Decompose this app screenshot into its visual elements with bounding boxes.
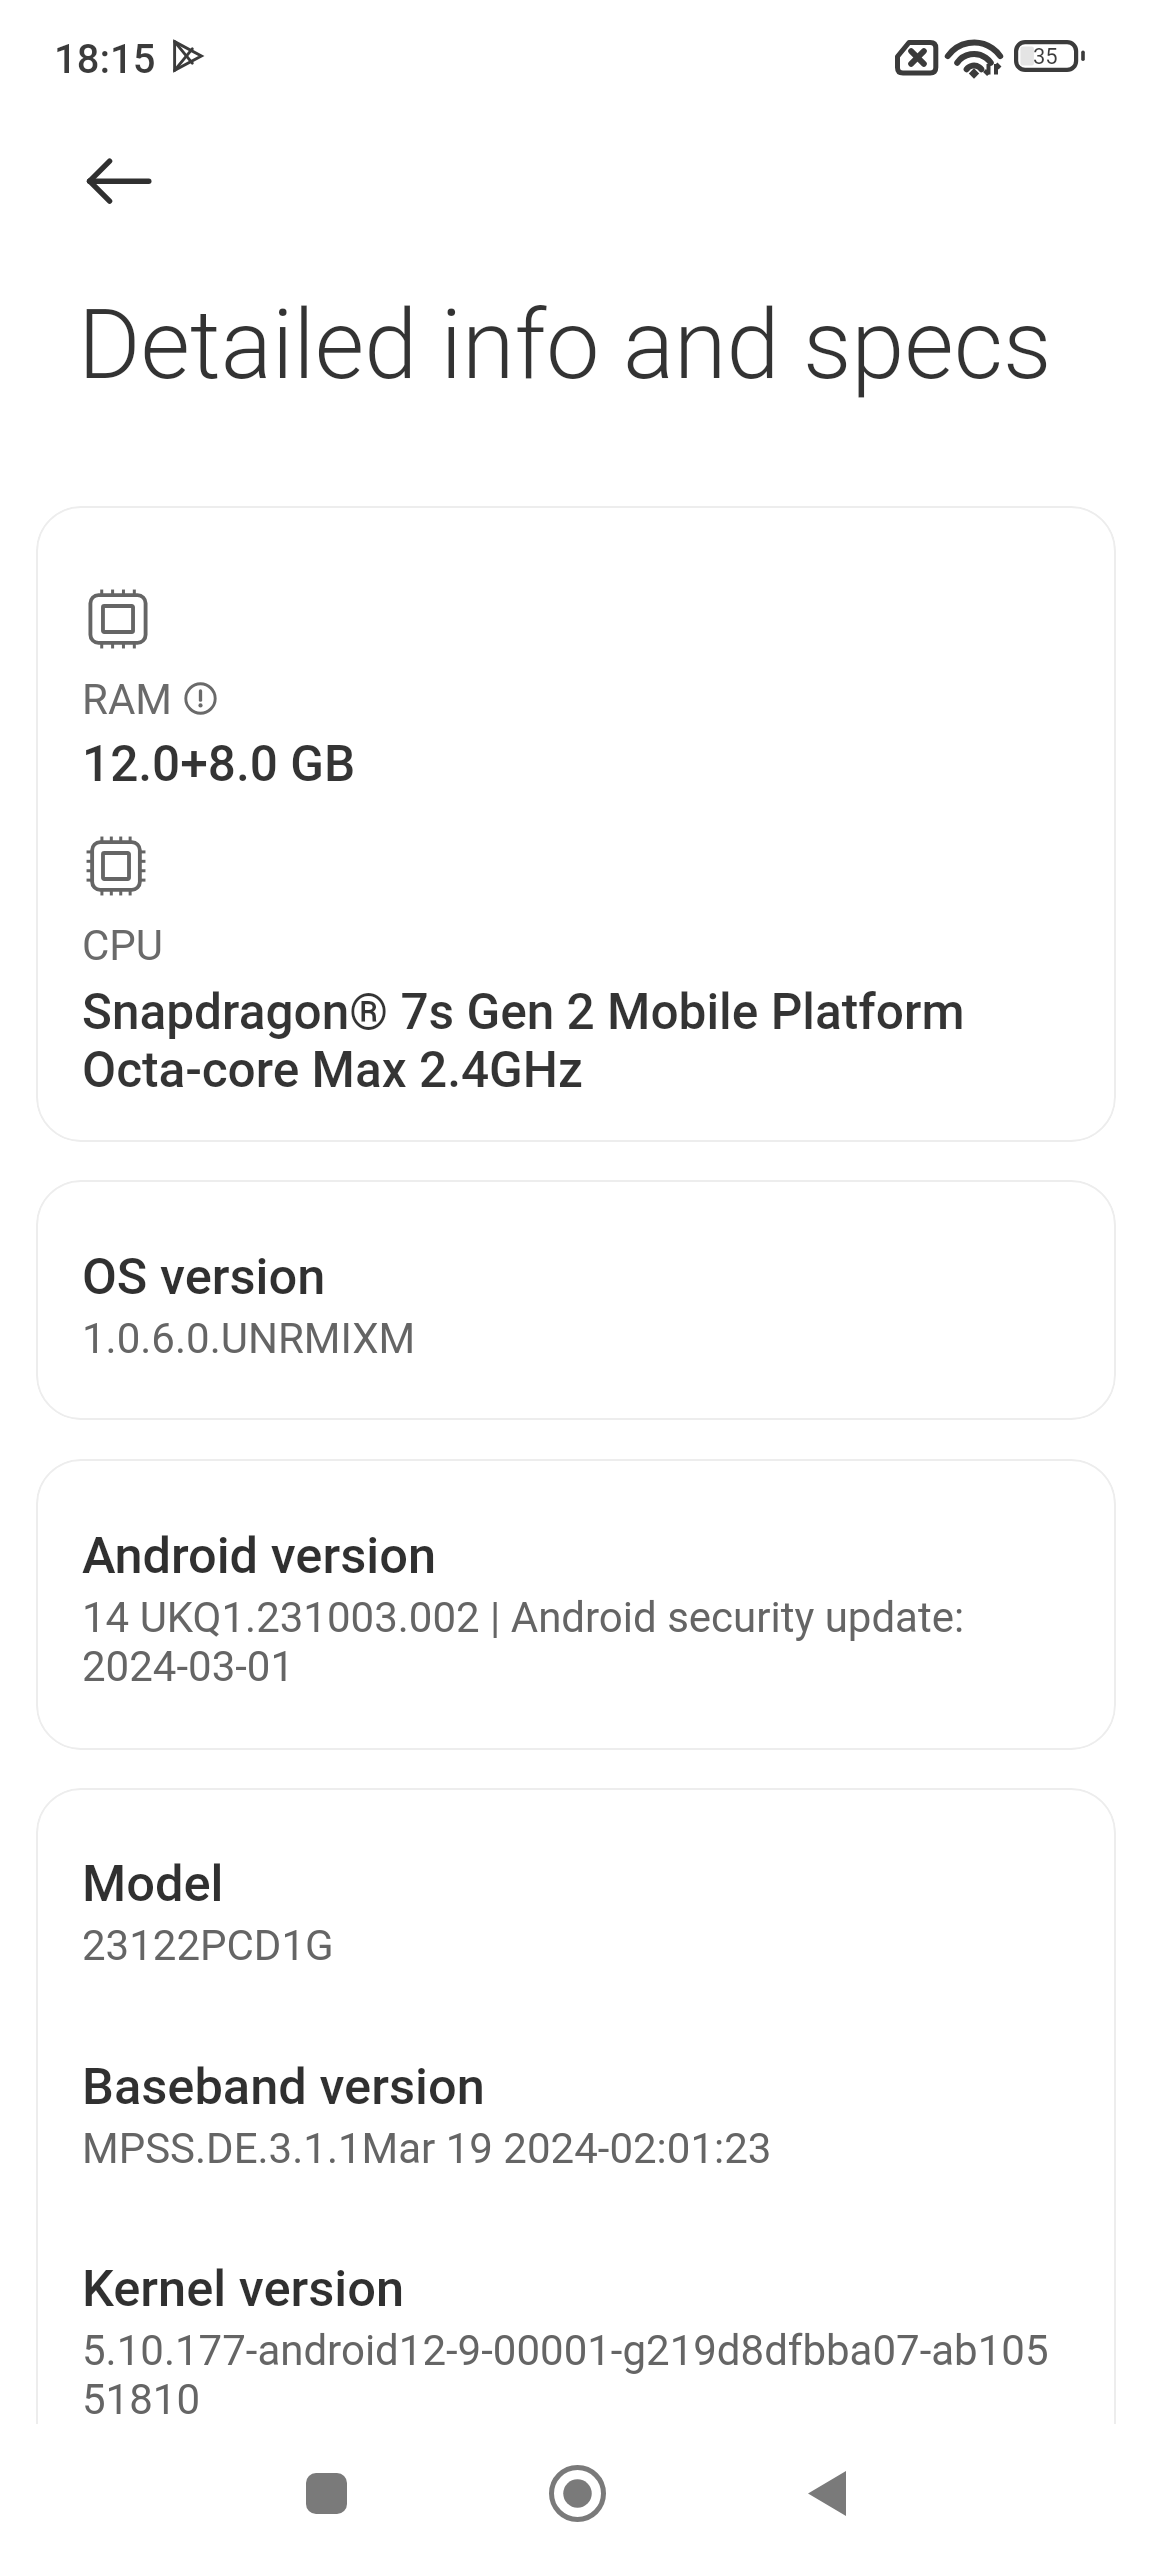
button[interactable]: About RAM bbox=[184, 682, 217, 715]
staticText: 5.10.177-android12-9-00001-g219d8dfbba07… bbox=[82, 2326, 1049, 2424]
button[interactable] bbox=[36, 506, 1116, 1142]
button[interactable] bbox=[36, 1180, 1116, 1420]
staticText: Android version bbox=[82, 1526, 437, 1585]
staticText: 35 bbox=[1033, 44, 1058, 70]
staticText: RAM bbox=[82, 675, 172, 724]
staticText: Model bbox=[82, 1854, 224, 1913]
staticText: 23122PCD1G bbox=[82, 1921, 334, 1970]
staticText: 14 UKQ1.231003.002 | Android security up… bbox=[82, 1593, 965, 1691]
staticText: Snapdragon® 7s Gen 2 Mobile Platform Oct… bbox=[82, 983, 965, 1099]
staticText: Baseband version bbox=[82, 2057, 485, 2116]
staticText: Kernel version bbox=[82, 2259, 405, 2318]
staticText: Detailed info and specs bbox=[78, 289, 1052, 401]
button[interactable]: Recent apps bbox=[276, 2443, 376, 2543]
staticText: 18:15 bbox=[54, 36, 156, 83]
button[interactable]: Home bbox=[527, 2443, 627, 2543]
staticText: MPSS.DE.3.1.1Mar 19 2024-02:01:23 bbox=[82, 2124, 772, 2173]
button[interactable] bbox=[36, 1459, 1116, 1750]
button[interactable]: Back bbox=[74, 136, 164, 226]
staticText: 1.0.6.0.UNRMIXM bbox=[82, 1314, 416, 1363]
staticText: 12.0+8.0 GB bbox=[82, 735, 356, 793]
staticText: OS version bbox=[82, 1247, 326, 1306]
button[interactable] bbox=[36, 1788, 1116, 2424]
staticText: CPU bbox=[82, 921, 164, 970]
button[interactable]: Back bbox=[777, 2443, 877, 2543]
